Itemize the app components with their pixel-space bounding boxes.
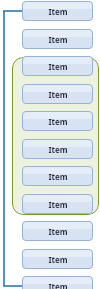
button[interactable]: Item 9 [22,221,93,241]
staticText: Item [48,226,68,237]
staticText: Item [48,89,68,100]
button[interactable]: Item 1 [22,1,93,21]
button[interactable]: Item 3 [22,56,93,76]
staticText: Item [48,144,68,155]
button[interactable]: Item 7 [22,166,93,186]
staticText: Item [48,171,68,182]
button[interactable]: Item 4 [22,84,93,104]
staticText: Item [48,199,68,210]
staticText: Item [48,116,68,127]
staticText: Item [48,34,68,45]
staticText: Item [48,6,68,17]
button[interactable]: Item 11 [22,276,93,289]
staticText: Item [48,254,68,265]
button[interactable]: Item 2 [22,29,93,49]
staticText: Item [48,61,68,72]
button[interactable]: Item 5 [22,111,93,131]
button[interactable]: Item 10 [22,249,93,269]
button[interactable]: Item 6 [22,139,93,159]
button[interactable]: Item 8 [22,194,93,214]
staticText: Item [48,281,68,289]
